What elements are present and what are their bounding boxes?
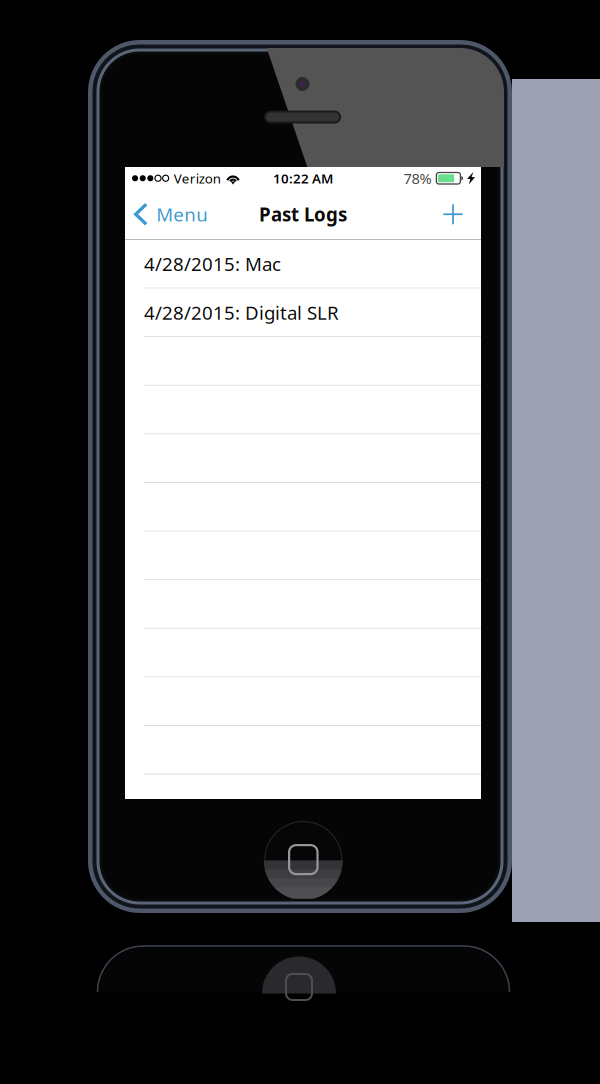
- staticText: 78%: [403, 168, 431, 188]
- staticText: 4/28/2015: Digital SLR: [144, 300, 339, 325]
- button[interactable]: 4/28/2015: Mac: [125, 240, 481, 289]
- staticText: 10:22 AM: [273, 169, 333, 187]
- button[interactable]: 4/28/2015: Digital SLR: [125, 289, 481, 337]
- staticText: 4/28/2015: Mac: [144, 251, 281, 276]
- button[interactable]: Add log: [431, 189, 481, 239]
- button[interactable]: Menu: [125, 189, 214, 239]
- staticText: Menu: [156, 202, 208, 227]
- staticText: Verizon: [174, 169, 221, 187]
- staticText: Past Logs: [259, 202, 347, 227]
